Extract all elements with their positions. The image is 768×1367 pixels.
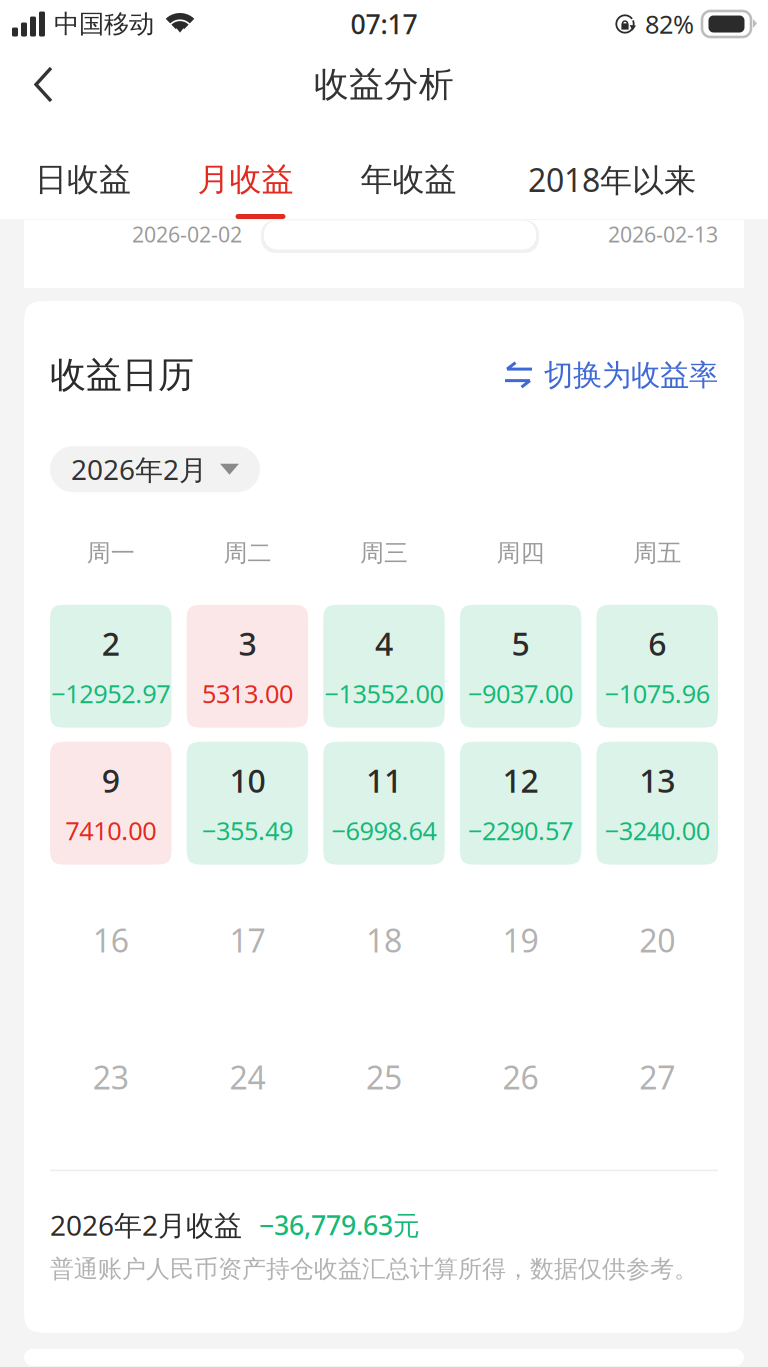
staticText: 82% xyxy=(645,7,694,41)
button[interactable]: 6 xyxy=(596,605,718,728)
staticText: 07:17 xyxy=(350,6,417,42)
staticText: −1075.96 xyxy=(605,677,710,710)
staticText: −13552.00 xyxy=(324,677,443,710)
button[interactable]: 5 xyxy=(460,605,581,728)
button[interactable]: 2026年2月 xyxy=(50,446,260,492)
button[interactable]: 12 xyxy=(460,742,581,865)
staticText: 2018年以来 xyxy=(528,158,696,201)
staticText: 2 xyxy=(102,622,120,665)
button[interactable]: 24 xyxy=(187,1016,308,1139)
button[interactable]: 年收益 xyxy=(327,121,490,219)
staticText: −3240.00 xyxy=(605,814,710,847)
staticText: 13 xyxy=(639,759,675,802)
staticText: 切换为收益率 xyxy=(544,357,718,393)
button[interactable]: 23 xyxy=(50,1016,172,1139)
button[interactable]: 25 xyxy=(323,1016,445,1139)
button[interactable]: 16 xyxy=(50,879,172,1002)
staticText: 6 xyxy=(648,622,666,665)
button[interactable]: 13 xyxy=(596,742,718,865)
button[interactable]: 4 xyxy=(323,605,445,728)
staticText: 20 xyxy=(639,919,675,961)
staticText: 周二 xyxy=(223,538,271,568)
staticText: 月收益 xyxy=(197,160,293,199)
staticText: 2026-02-02 xyxy=(132,220,242,248)
staticText: −6998.64 xyxy=(331,814,436,847)
button[interactable]: 20 xyxy=(596,879,718,1002)
staticText: 18 xyxy=(366,919,402,961)
staticText: 12 xyxy=(503,759,539,802)
staticText: 4 xyxy=(375,622,393,665)
staticText: 27 xyxy=(639,1056,675,1098)
staticText: 3 xyxy=(238,622,256,665)
button[interactable]: 2 xyxy=(50,605,172,728)
staticText: 2026-02-13 xyxy=(608,220,718,248)
staticText: −12952.97 xyxy=(51,677,170,710)
staticText: −355.49 xyxy=(202,814,293,847)
button[interactable]: 11 xyxy=(323,742,445,865)
button[interactable]: 3 xyxy=(187,605,308,728)
staticText: 日收益 xyxy=(35,160,131,199)
staticText: 11 xyxy=(366,759,402,802)
button[interactable]: 18 xyxy=(323,879,445,1002)
staticText: 24 xyxy=(229,1056,265,1098)
staticText: 普通账户人民币资产持仓收益汇总计算所得，数据仅供参考。 xyxy=(50,1254,698,1284)
staticText: 周四 xyxy=(497,538,545,568)
staticText: 5313.00 xyxy=(202,677,293,710)
staticText: 23 xyxy=(93,1056,129,1098)
staticText: 中国移动 xyxy=(54,8,154,39)
staticText: 收益分析 xyxy=(314,63,454,106)
staticText: 收益日历 xyxy=(50,353,194,397)
staticText: 26 xyxy=(503,1056,539,1098)
staticText: 19 xyxy=(503,919,539,961)
button[interactable]: 10 xyxy=(187,742,308,865)
staticText: 周三 xyxy=(360,538,408,568)
button[interactable]: 切换为收益率 xyxy=(504,357,718,393)
staticText: 10 xyxy=(229,759,265,802)
staticText: 7410.00 xyxy=(65,814,156,847)
button[interactable]: 2018年以来 xyxy=(490,121,734,219)
staticText: −36,779.63元 xyxy=(259,1207,420,1242)
button[interactable]: 月收益 xyxy=(164,121,327,219)
button[interactable]: 26 xyxy=(460,1016,581,1139)
staticText: −2290.57 xyxy=(468,814,573,847)
staticText: 2026年2月收益 xyxy=(50,1206,242,1243)
button[interactable]: 日收益 xyxy=(2,121,164,219)
staticText: 9 xyxy=(102,759,120,802)
staticText: 周五 xyxy=(633,538,681,568)
staticText: 16 xyxy=(93,919,129,961)
staticText: −9037.00 xyxy=(468,677,573,710)
button[interactable]: 27 xyxy=(596,1016,718,1139)
staticText: 5 xyxy=(512,622,530,665)
button[interactable]: Back xyxy=(0,48,80,121)
staticText: 2026年2月 xyxy=(71,451,207,488)
staticText: 周一 xyxy=(87,538,135,568)
button[interactable]: 19 xyxy=(460,879,581,1002)
button[interactable]: 9 xyxy=(50,742,172,865)
staticText: 17 xyxy=(229,919,265,961)
staticText: 25 xyxy=(366,1056,402,1098)
button[interactable]: 17 xyxy=(187,879,308,1002)
staticText: 年收益 xyxy=(360,160,456,199)
